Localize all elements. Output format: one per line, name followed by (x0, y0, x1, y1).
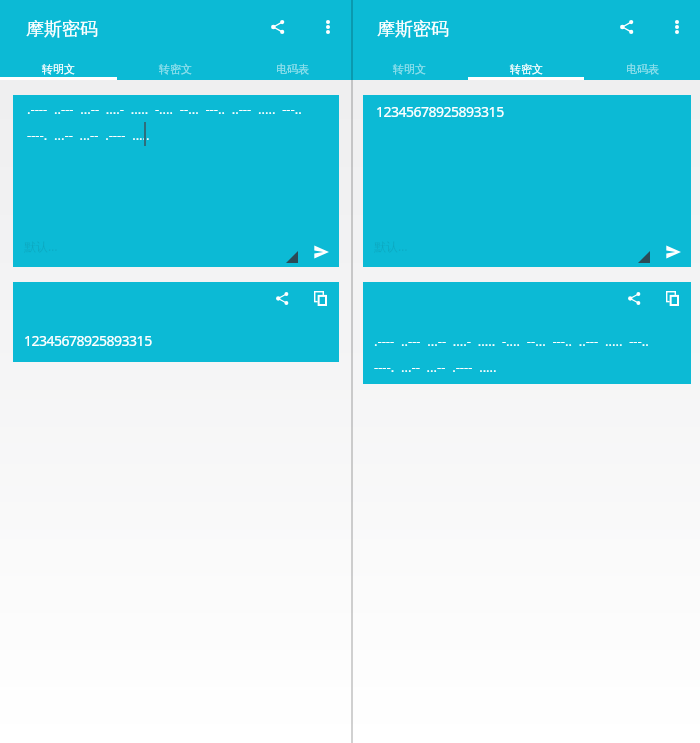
button[interactable]: 转明文 (351, 53, 468, 80)
staticText: .---- ..--- ...-- ....- ..... -.... --..… (374, 332, 649, 350)
button[interactable]: Send (313, 244, 329, 260)
staticText: ----. ...-- ...-- .---- ..... (374, 358, 497, 376)
button[interactable]: More options (306, 5, 350, 49)
staticText: 电码表 (626, 62, 659, 76)
button[interactable]: Share (268, 284, 296, 312)
staticText: 转明文 (42, 62, 75, 76)
staticText: .---- ..--- ...-- ....- ..... -.... --..… (27, 100, 302, 118)
button[interactable]: Send (665, 244, 681, 260)
button[interactable]: Copy (306, 284, 334, 312)
button[interactable]: Share (605, 5, 649, 49)
staticText: 默认… (374, 238, 408, 254)
button[interactable]: 电码表 (584, 53, 700, 80)
staticText: 电码表 (276, 62, 309, 76)
staticText: 转明文 (393, 62, 426, 76)
button[interactable]: Copy (658, 284, 686, 312)
staticText: 摩斯密码 (377, 18, 449, 41)
staticText: 摩斯密码 (26, 18, 98, 41)
button[interactable]: Share (620, 284, 648, 312)
button[interactable]: More options (655, 5, 699, 49)
button[interactable]: Share (256, 5, 300, 49)
button[interactable]: 转明文 (0, 53, 117, 80)
button[interactable]: 电码表 (234, 53, 351, 80)
staticText: 转密文 (159, 62, 192, 76)
staticText: 12345678925893315 (376, 102, 504, 121)
staticText: ----. ...-- ...-- .---- ..... (27, 126, 150, 144)
button[interactable]: 转密文 (468, 53, 584, 80)
button[interactable]: 转密文 (117, 53, 234, 80)
staticText: 默认… (24, 238, 58, 254)
staticText: 12345678925893315 (24, 331, 152, 350)
staticText: 转密文 (510, 62, 543, 76)
